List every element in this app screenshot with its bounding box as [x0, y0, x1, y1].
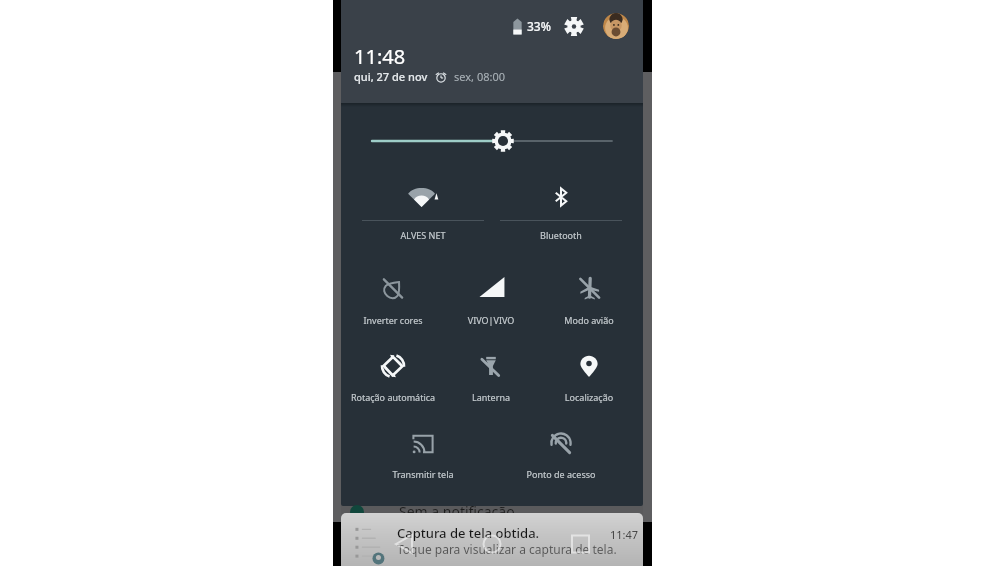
staticText: Inverter cores [344, 314, 442, 326]
staticText: 11:48 [354, 43, 406, 70]
button[interactable]: Captura de tela obtida. [341, 513, 643, 566]
button[interactable]: Localização [540, 348, 638, 407]
staticText: Captura de tela obtida. [397, 524, 540, 542]
staticText: ALVES NET [374, 229, 472, 241]
button[interactable]: ALVES NET [374, 179, 472, 245]
button[interactable]: Transmitir tela [374, 426, 472, 484]
staticText: Ponto de acesso [512, 468, 610, 480]
staticText: Bluetooth [512, 229, 610, 241]
staticText: Rotação automática [344, 391, 442, 403]
button[interactable]: User account [603, 13, 629, 39]
staticText: sex, 08:00 [454, 69, 505, 84]
staticText: Localização [540, 391, 638, 403]
button[interactable]: Bluetooth [512, 179, 610, 245]
staticText: Sem a notificação [399, 506, 515, 514]
button[interactable]: Inverter cores [344, 270, 442, 330]
staticText: Transmitir tela [374, 468, 472, 480]
staticText: Modo avião [540, 314, 638, 326]
staticText: Toque para visualizar a captura de tela. [397, 541, 617, 557]
button[interactable]: Settings [561, 13, 587, 39]
staticText: qui, 27 de nov [354, 69, 428, 84]
button[interactable]: VIVO|VIVO [442, 270, 540, 330]
staticText: 33% [527, 18, 551, 34]
button[interactable]: Lanterna [442, 348, 540, 407]
button[interactable]: Modo avião [540, 270, 638, 330]
staticText: 11:47 [610, 527, 639, 542]
button[interactable]: Ponto de acesso [512, 426, 610, 484]
staticText: VIVO|VIVO [442, 314, 540, 326]
staticText: Lanterna [442, 391, 540, 403]
button[interactable]: Rotação automática [344, 348, 442, 407]
